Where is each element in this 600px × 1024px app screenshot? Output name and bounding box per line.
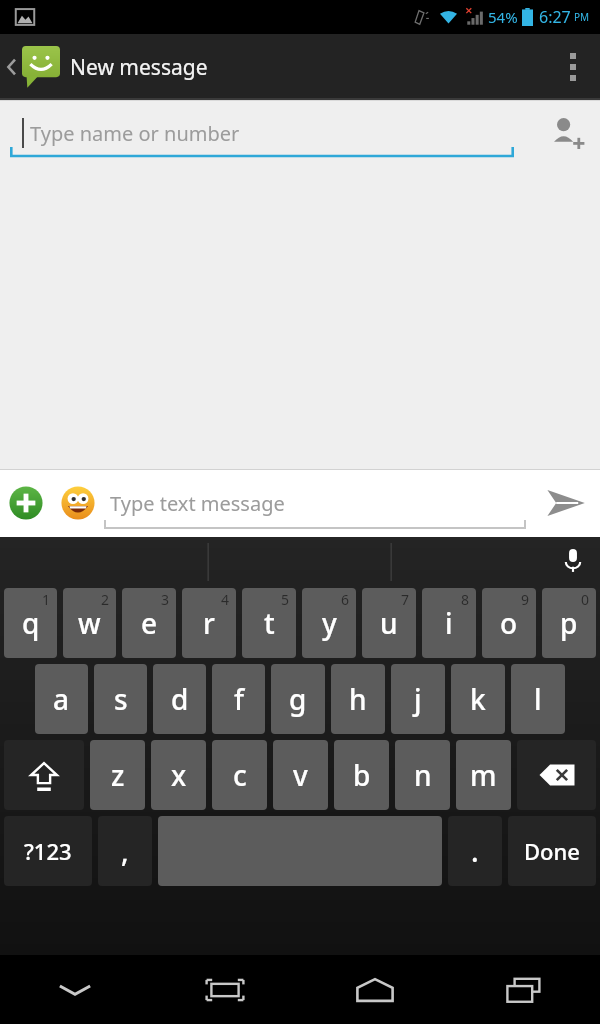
staticText: h [349,680,367,718]
staticText: q [22,604,40,642]
button[interactable]: q [4,588,57,658]
button[interactable]: x [151,740,206,810]
staticText: 54% [488,7,518,27]
staticText: New message [70,53,208,82]
button[interactable]: Voice input [546,537,600,585]
button[interactable]: t [242,588,296,658]
staticText: 8 [461,590,470,609]
staticText: 6:27 [539,6,571,28]
staticText: 6 [341,590,350,609]
button[interactable]: Rotate screen [150,955,300,1024]
staticText: y [322,604,337,642]
button[interactable]: n [395,740,450,810]
staticText: t [264,604,275,642]
staticText: Type name or number [30,120,240,147]
staticText: x [171,756,187,794]
button[interactable]: f [212,664,265,734]
button[interactable]: Hide keyboard [0,955,150,1024]
staticText: v [293,756,308,794]
staticText: l [534,680,542,718]
button[interactable]: Recent apps [450,955,600,1024]
button[interactable]: p [542,588,596,658]
staticText: 1 [42,590,51,609]
staticText: 2 [101,590,110,609]
button[interactable]: h [331,664,385,734]
button[interactable]: l [511,664,565,734]
staticText: ?123 [24,836,72,866]
button[interactable]: j [391,664,445,734]
staticText: 0 [581,590,590,609]
button[interactable]: Shift [4,740,84,810]
staticText: r [203,604,215,642]
button[interactable]: a [35,664,88,734]
button[interactable]: ?123 [4,816,92,886]
button[interactable]: c [212,740,267,810]
button[interactable]: e [122,588,176,658]
button[interactable]: k [451,664,505,734]
button[interactable]: Home [300,955,450,1024]
staticText: m [470,756,497,794]
staticText: 4 [221,590,230,609]
staticText: j [414,680,422,718]
button[interactable]: g [271,664,325,734]
button[interactable]: s [94,664,147,734]
staticText: k [470,680,486,718]
button[interactable]: Type name or number [10,107,514,159]
button[interactable]: Navigate up [0,40,68,94]
button[interactable]: Backspace [517,740,596,810]
staticText: s [114,680,128,718]
button[interactable]: Insert smiley [52,477,104,529]
staticText: z [111,756,125,794]
staticText: b [353,756,371,794]
staticText: d [171,680,189,718]
staticText: 9 [521,590,530,609]
staticText: 7 [401,590,410,609]
staticText: p [560,604,578,642]
button[interactable]: Done [508,816,596,886]
staticText: i [445,604,453,642]
staticText: o [500,604,518,642]
button[interactable]: r [182,588,236,658]
staticText: w [78,604,101,642]
staticText: f [234,680,244,718]
staticText: u [380,604,398,642]
button[interactable]: u [362,588,416,658]
button[interactable]: v [273,740,328,810]
button[interactable]: d [153,664,206,734]
button[interactable]: Add recipient from contacts [532,100,600,166]
staticText: c [233,756,247,794]
button[interactable]: , [98,816,152,886]
button[interactable]: m [456,740,511,810]
button[interactable]: i [422,588,476,658]
button[interactable]: o [482,588,536,658]
button[interactable]: Send [530,469,600,537]
staticText: e [141,604,158,642]
button[interactable]: More options [546,34,600,100]
staticText: g [289,680,307,718]
button[interactable]: Attach [0,477,52,529]
staticText: Done [524,836,580,866]
staticText: , [121,832,129,870]
button[interactable]: w [63,588,116,658]
staticText: 5 [281,590,290,609]
staticText: n [414,756,432,794]
staticText: . [471,832,479,870]
button[interactable]: y [302,588,356,658]
staticText: a [53,680,70,718]
staticText: 3 [161,590,170,609]
button[interactable]: z [90,740,145,810]
button[interactable]: b [334,740,389,810]
staticText: PM [574,10,590,24]
button[interactable]: . [448,816,502,886]
button[interactable]: Type text message [104,475,530,531]
staticText: Type text message [110,490,285,517]
